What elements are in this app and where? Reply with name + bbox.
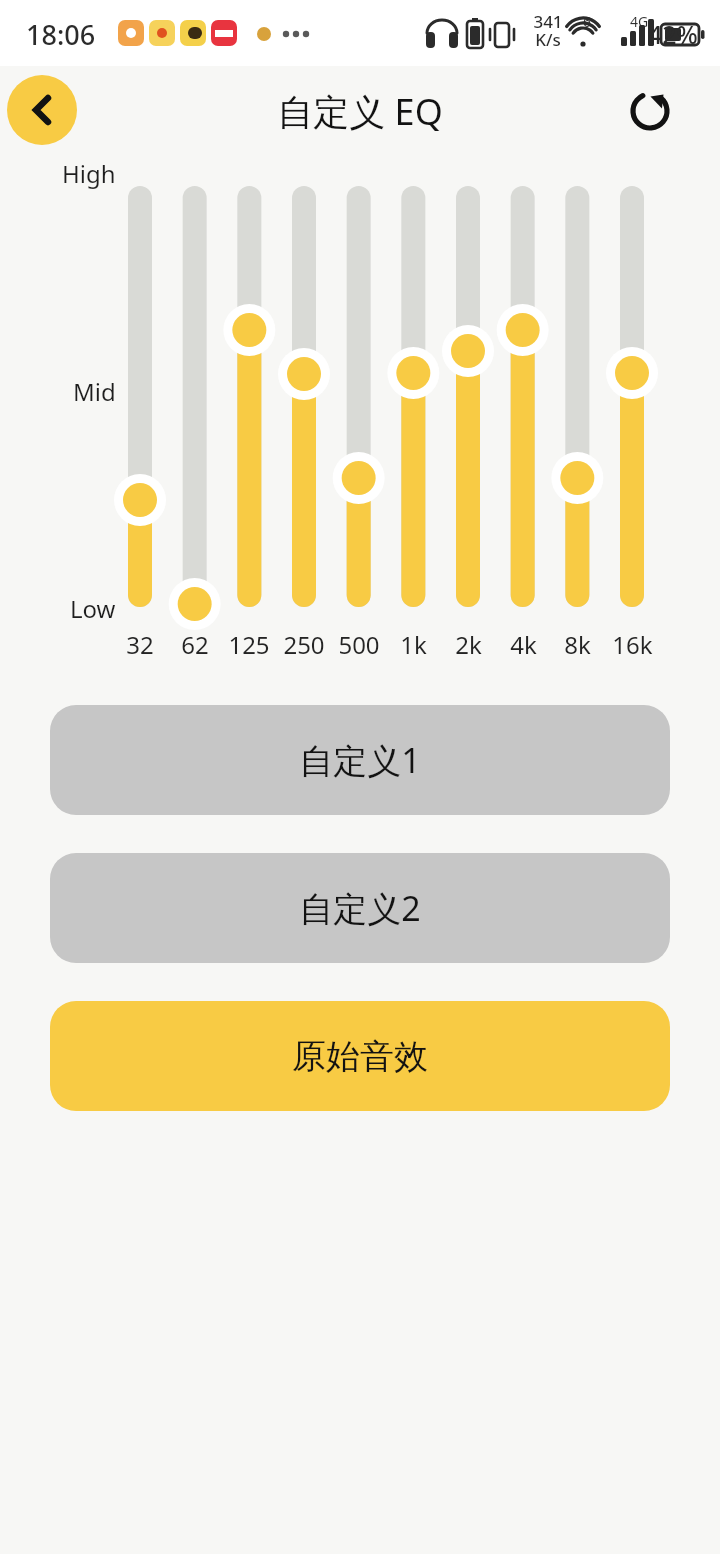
staticText: 6	[583, 12, 592, 31]
staticText: 62	[181, 628, 209, 660]
button[interactable]: 250 Hz band	[278, 172, 330, 621]
button[interactable]: 4k Hz band	[497, 172, 549, 621]
staticText: 原始音效	[292, 1035, 428, 1078]
staticText: 341 K/s	[533, 10, 563, 51]
staticText: Mid	[73, 375, 116, 408]
staticText: 4k	[510, 628, 537, 660]
staticText: 自定义2	[299, 885, 421, 931]
button[interactable]: 8k Hz band	[551, 172, 603, 621]
staticText: 2k	[455, 628, 482, 660]
button[interactable]: 1k Hz band	[387, 172, 439, 621]
button[interactable]: Back	[7, 75, 77, 145]
button[interactable]: 32 Hz band	[114, 172, 166, 621]
button[interactable]: Reset	[616, 76, 684, 144]
staticText: 42%	[648, 17, 698, 51]
button[interactable]: 16k Hz band	[606, 172, 658, 621]
staticText: 500	[338, 628, 380, 660]
staticText: Low	[70, 592, 116, 625]
staticText: 自定义1	[299, 737, 421, 783]
staticText: 自定义 EQ	[277, 87, 443, 136]
button[interactable]: 62 Hz band	[169, 172, 221, 621]
button[interactable]: 自定义2	[50, 853, 670, 963]
staticText: 8k	[564, 628, 591, 660]
staticText: 18:06	[26, 16, 96, 53]
staticText: 1k	[400, 628, 427, 660]
button[interactable]: 原始音效	[50, 1001, 670, 1111]
button[interactable]: 125 Hz band	[223, 172, 275, 621]
staticText: 16k	[612, 628, 653, 660]
staticText: 32	[126, 628, 154, 660]
button[interactable]: 2k Hz band	[442, 172, 494, 621]
staticText: 250	[283, 628, 325, 660]
staticText: 4G	[630, 12, 649, 31]
button[interactable]: 500 Hz band	[333, 172, 385, 621]
staticText: High	[62, 157, 116, 190]
staticText: 125	[228, 628, 270, 660]
button[interactable]: 自定义1	[50, 705, 670, 815]
